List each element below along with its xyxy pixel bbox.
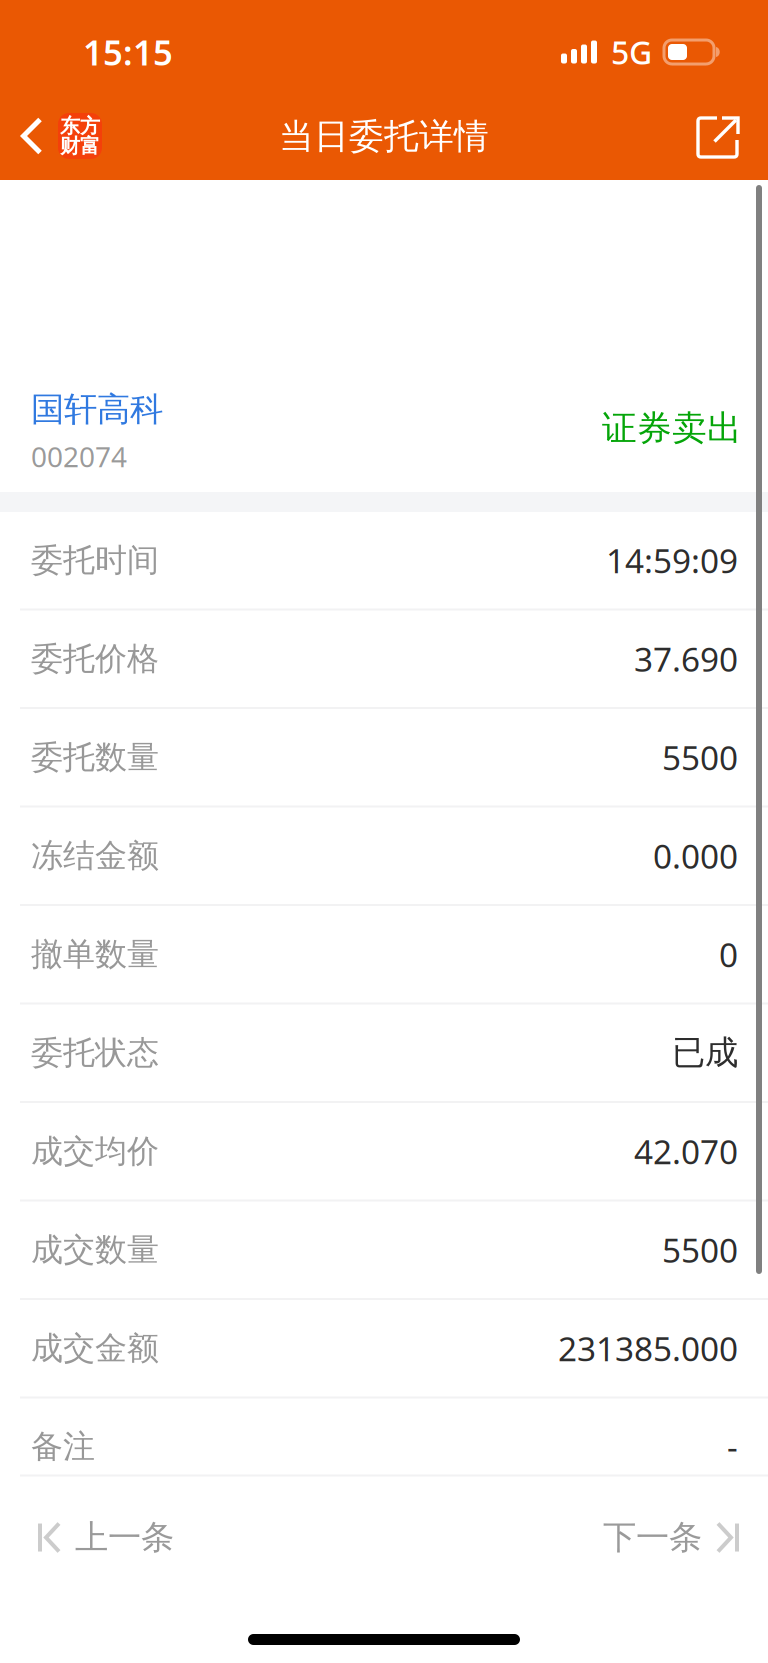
button[interactable]: Back [0,96,118,180]
staticText: 东方 [60,114,100,138]
staticText: 成交数量 [31,1230,159,1269]
staticText: 委托价格 [31,639,159,678]
staticText: 42.070 [634,1129,738,1173]
staticText: 成交金额 [31,1329,159,1368]
staticText: 备注 [31,1427,95,1466]
staticText: 证券卖出 [602,407,742,449]
button[interactable]: 上一条 [0,1476,198,1586]
staticText: 委托时间 [31,541,159,580]
staticText: 14:59:09 [606,538,738,582]
staticText: 上一条 [75,1517,174,1558]
button[interactable]: Share [670,96,768,180]
button[interactable]: 下一条 [579,1476,768,1586]
staticText: 撤单数量 [31,935,159,974]
staticText: 0 [719,932,738,976]
staticText: 已成 [672,1032,738,1073]
staticText: 下一条 [603,1517,702,1558]
staticText: 委托状态 [31,1033,159,1072]
staticText: 37.690 [634,637,738,681]
staticText: 成交均价 [31,1132,159,1171]
staticText: 国轩高科 [31,389,163,430]
staticText: 委托数量 [31,738,159,777]
staticText: 财富 [60,134,100,158]
staticText: 5G [611,31,652,73]
staticText: 231385.000 [558,1326,738,1370]
staticText: 15:15 [83,29,173,75]
staticText: 冻结金额 [31,836,159,875]
staticText: 5500 [662,735,738,779]
staticText: 5500 [662,1228,738,1272]
staticText: 002074 [31,438,127,475]
staticText: 当日委托详情 [279,115,489,158]
staticText: 0.000 [653,834,738,878]
staticText: - [727,1424,738,1469]
